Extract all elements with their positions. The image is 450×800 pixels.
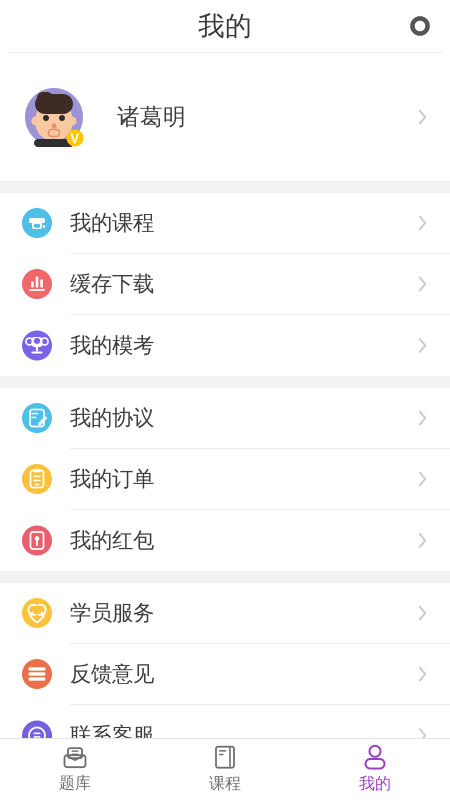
button[interactable]: 设置 [398,4,442,48]
button[interactable]: 我的 [300,738,450,800]
button[interactable]: 题库 [0,738,150,800]
staticText: 我的 [198,10,252,42]
button[interactable]: 反馈意见 [0,644,450,705]
button[interactable]: 我的红包 [0,510,450,571]
button[interactable]: 我的模考 [0,315,450,376]
staticText: 我的订单 [70,466,154,492]
staticText: 课程 [209,774,241,793]
staticText: 题库 [59,773,91,793]
button[interactable]: 我的协议 [0,388,450,449]
button[interactable]: V [0,53,450,181]
button[interactable]: 我的订单 [0,449,450,510]
staticText: 我的协议 [70,405,154,431]
staticText: V [70,129,79,147]
staticText: 学员服务 [70,600,154,626]
button[interactable]: 联系客服 [0,705,450,766]
staticText: 我的红包 [70,527,154,554]
button[interactable]: 缓存下载 [0,254,450,315]
staticText: 反馈意见 [70,661,154,687]
staticText: 我的 [359,774,391,793]
staticText: 联系客服 [70,722,154,749]
button[interactable]: 学员服务 [0,583,450,644]
staticText: 我的模考 [70,332,154,359]
button[interactable]: 我的课程 [0,193,450,254]
staticText: 缓存下载 [70,271,154,297]
button[interactable]: 课程 [150,738,300,800]
staticText: 诸葛明 [117,103,186,131]
staticText: 我的课程 [70,210,154,236]
